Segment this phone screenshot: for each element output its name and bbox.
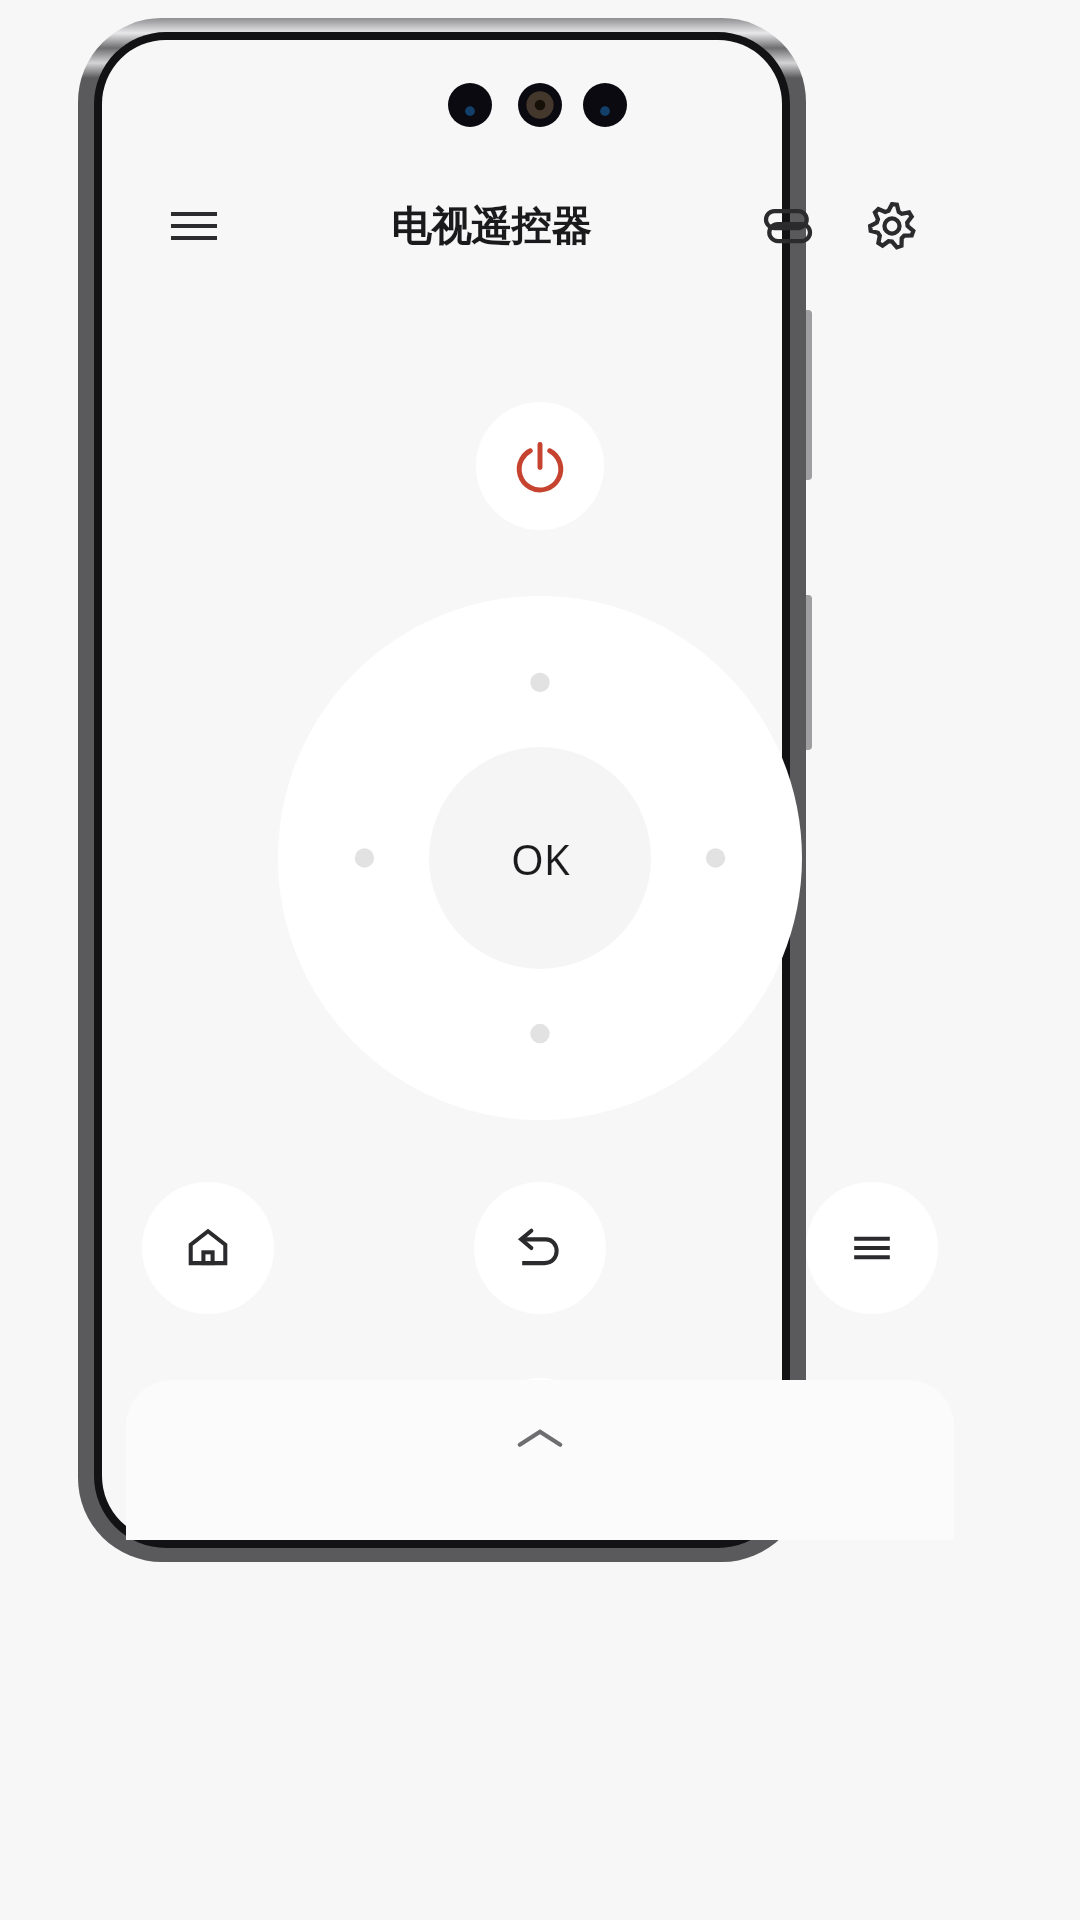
button[interactable]: Expand panel [126,1380,954,1540]
button[interactable]: Connect device [750,188,826,264]
button[interactable]: Menu [156,188,232,264]
staticText: VOL [512,1440,568,1477]
button[interactable]: Settings [854,188,930,264]
button[interactable]: Direction pad [278,596,802,1120]
staticText: 电视遥控器 [391,201,591,251]
button[interactable]: Back [474,1182,606,1314]
button[interactable]: OK [429,747,651,969]
button[interactable]: Power [476,402,604,530]
button[interactable]: Menu [806,1182,938,1314]
button[interactable]: Home [142,1182,274,1314]
button[interactable]: Volume up [477,1378,603,1440]
staticText: OK [511,830,570,887]
